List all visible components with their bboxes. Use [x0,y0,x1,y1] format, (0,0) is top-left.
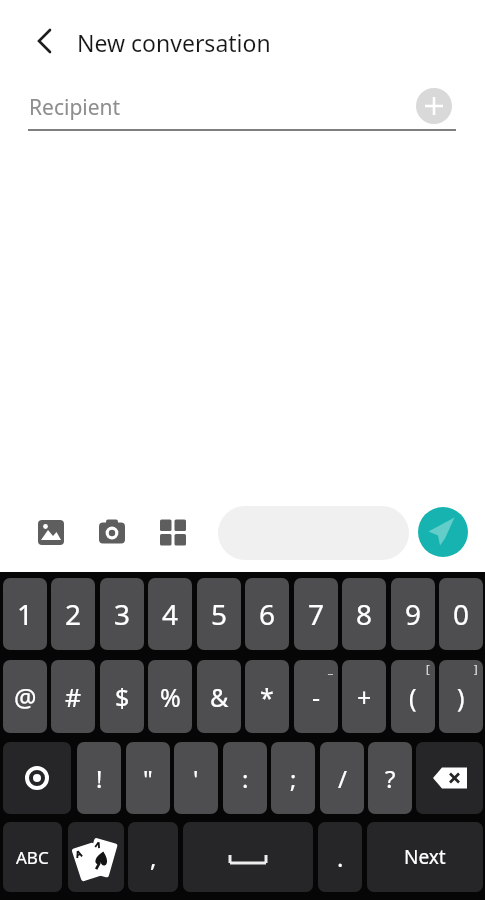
button[interactable]: 8 [342,578,386,650]
staticText: ABC [16,846,49,869]
staticText: Recipient [29,93,121,122]
staticText: ? [385,762,396,795]
staticText: 2 [65,595,82,633]
button[interactable] [183,822,313,892]
button[interactable] [36,517,66,547]
staticText: 6 [259,595,276,633]
button[interactable]: " [126,742,170,814]
staticText: 8 [356,595,373,633]
button[interactable] [418,507,468,557]
button[interactable]: $ [100,660,144,733]
button[interactable]: 3 [100,578,144,650]
staticText: ] [474,661,478,676]
button[interactable]: - [294,660,338,733]
button[interactable] [416,742,483,814]
button[interactable]: @ [3,660,47,733]
staticText: ! [96,762,103,795]
staticText: . [337,841,344,874]
button[interactable] [68,822,124,892]
button[interactable]: ) [439,660,483,733]
staticText: $ [115,680,130,714]
button[interactable]: & [197,660,241,733]
button[interactable]: 5 [197,578,241,650]
staticText: [ [426,661,430,676]
button[interactable]: ABC [3,822,62,892]
button[interactable]: 7 [294,578,338,650]
button[interactable] [3,742,71,814]
button[interactable]: ' [174,742,218,814]
staticText: _ [328,661,333,676]
button[interactable]: ? [368,742,412,814]
staticText: 0 [453,595,470,633]
button[interactable] [158,517,188,547]
button[interactable]: * [245,660,289,733]
staticText: ( [409,680,417,714]
button[interactable]: 4 [148,578,192,650]
staticText: " [143,762,153,795]
button[interactable]: 2 [51,578,95,650]
button[interactable]: # [51,660,95,733]
button[interactable] [416,88,452,124]
button[interactable] [218,506,409,560]
staticText: & [210,680,229,714]
button[interactable]: + [342,660,386,733]
staticText: Next [404,844,446,870]
staticText: 3 [114,595,131,633]
staticText: - [312,680,321,714]
staticText: 5 [211,595,228,633]
staticText: ' [193,762,199,795]
staticText: @ [14,680,37,714]
staticText: ) [457,680,465,714]
button[interactable]: / [320,742,364,814]
staticText: : [242,762,249,795]
button[interactable]: . [318,822,362,892]
button[interactable]: , [128,822,178,892]
staticText: + [357,680,372,714]
button[interactable]: Next [367,822,483,892]
button[interactable] [28,24,62,58]
staticText: 4 [162,595,179,633]
staticText: New conversation [77,27,271,58]
button[interactable]: ( [391,660,435,733]
staticText: 7 [308,595,325,633]
button[interactable]: 1 [3,578,47,650]
staticText: 9 [405,595,422,633]
button[interactable]: ; [271,742,315,814]
button[interactable]: % [148,660,192,733]
staticText: , [150,841,157,874]
button[interactable] [97,517,127,547]
staticText: 1 [17,595,34,633]
staticText: * [260,680,274,714]
staticText: ; [290,762,297,795]
button[interactable]: : [223,742,267,814]
staticText: # [65,680,82,714]
button[interactable]: 0 [439,578,483,650]
staticText: / [338,762,347,795]
button[interactable]: 9 [391,578,435,650]
button[interactable]: ! [77,742,121,814]
staticText: % [160,680,181,714]
button[interactable]: 6 [245,578,289,650]
